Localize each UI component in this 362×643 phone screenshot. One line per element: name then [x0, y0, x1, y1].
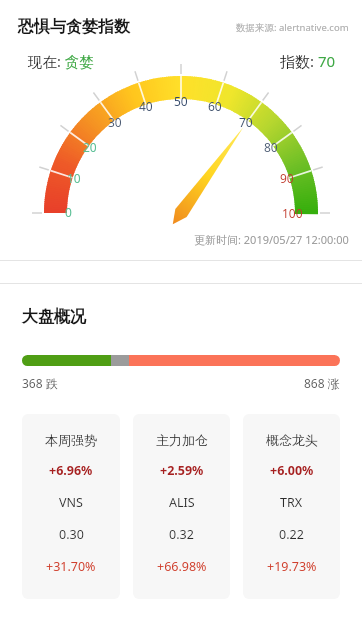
staticText: +31.70% [46, 558, 96, 575]
staticText: 100 [282, 205, 303, 221]
staticText: +66.98% [157, 558, 207, 575]
staticText: 40 [139, 98, 153, 114]
button[interactable]: 概念龙头 [243, 414, 340, 599]
staticText: 80 [264, 139, 278, 155]
staticText: 主力加仓 [156, 432, 208, 448]
button[interactable]: 本周强势 [22, 414, 120, 599]
button[interactable] [22, 355, 340, 366]
staticText: +6.96% [49, 462, 93, 479]
staticText: +19.73% [267, 558, 317, 575]
staticText: 恐惧与贪婪指数 [18, 17, 130, 37]
staticText: 本周强势 [45, 432, 97, 448]
staticText: 0 [65, 204, 72, 220]
staticText: +6.00% [270, 462, 314, 479]
staticText: +2.59% [160, 462, 204, 479]
staticText: 90 [280, 170, 294, 186]
staticText: 现在: 贪婪 [28, 51, 94, 71]
staticText: 70 [239, 114, 253, 130]
staticText: 指数: 70 [280, 51, 336, 71]
staticText: 868 涨 [304, 375, 340, 391]
staticText: 大盘概况 [22, 307, 86, 327]
staticText: TRX [280, 494, 303, 511]
staticText: 更新时间: 2019/05/27 12:00:00 [194, 232, 349, 247]
staticText: 30 [108, 114, 122, 130]
staticText: 0.30 [59, 526, 84, 543]
staticText: 20 [83, 139, 97, 155]
staticText: 0.22 [279, 526, 304, 543]
staticText: VNS [59, 494, 83, 511]
button[interactable]: 主力加仓 [133, 414, 230, 599]
staticText: 概念龙头 [266, 432, 318, 448]
staticText: 0.32 [169, 526, 194, 543]
staticText: 数据来源: alertnative.com [236, 21, 349, 34]
staticText: 10 [67, 170, 81, 186]
staticText: 60 [208, 98, 222, 114]
staticText: 368 跌 [22, 375, 58, 391]
staticText: 50 [174, 93, 188, 109]
staticText: ALIS [169, 494, 195, 511]
